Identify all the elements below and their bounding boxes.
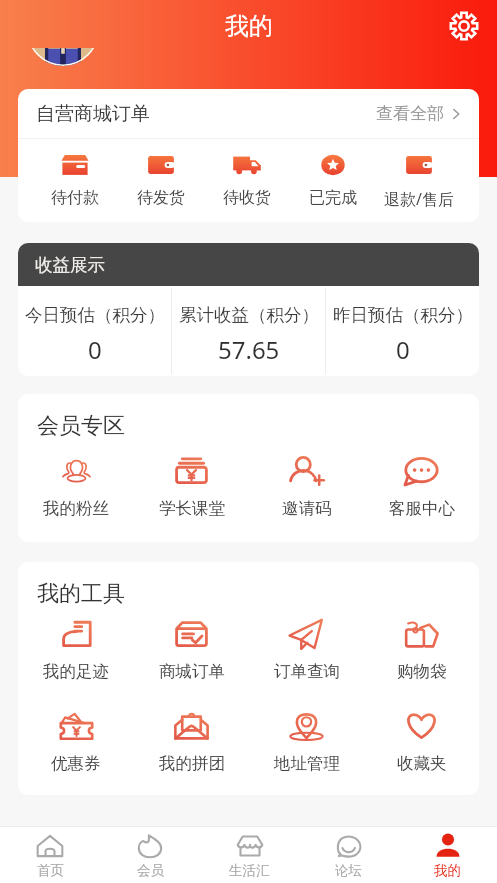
staticText: 购物袋: [397, 661, 447, 682]
button[interactable]: 累计收益（积分）: [172, 286, 325, 376]
button[interactable]: 待收货: [204, 149, 290, 208]
staticText: 收益展示: [35, 254, 105, 276]
button[interactable]: 昨日预估（积分）: [326, 286, 479, 376]
staticText: 首页: [37, 862, 64, 879]
staticText: 收藏夹: [397, 753, 447, 774]
button[interactable]: 待发货: [118, 149, 204, 208]
button[interactable]: 我的拼团: [134, 710, 249, 774]
staticText: 我的足迹: [43, 661, 109, 682]
button[interactable]: 收藏夹: [364, 710, 479, 774]
staticText: 商城订单: [159, 661, 225, 682]
staticText: 查看全部: [376, 103, 444, 124]
staticText: 57.65: [218, 333, 280, 366]
button[interactable]: 退款/售后: [376, 149, 462, 210]
button[interactable]: 学长课堂: [134, 455, 249, 519]
staticText: 客服中心: [389, 498, 455, 519]
staticText: 我的: [225, 11, 273, 41]
button[interactable]: 邀请码: [249, 455, 364, 519]
staticText: 我的工具: [37, 580, 125, 608]
button[interactable]: 优惠券: [18, 710, 134, 774]
staticText: 优惠券: [51, 753, 101, 774]
button[interactable]: 客服中心: [364, 455, 479, 519]
staticText: 我的拼团: [159, 753, 225, 774]
staticText: 昨日预估（积分）: [333, 304, 473, 326]
button[interactable]: 商城订单: [134, 618, 249, 682]
button[interactable]: 论坛: [299, 827, 398, 883]
staticText: 待发货: [137, 188, 185, 208]
staticText: 会员专区: [37, 412, 125, 440]
staticText: 邀请码: [282, 498, 332, 519]
button[interactable]: 待付款: [32, 149, 118, 208]
button[interactable]: 购物袋: [364, 618, 479, 682]
staticText: 待收货: [223, 188, 271, 208]
button[interactable]: 我的足迹: [18, 618, 134, 682]
staticText: 退款/售后: [384, 188, 454, 210]
staticText: 论坛: [335, 862, 362, 879]
staticText: 我的: [434, 862, 461, 879]
button[interactable]: 订单查询: [249, 618, 364, 682]
staticText: 订单查询: [274, 661, 340, 682]
staticText: 会员: [137, 862, 164, 879]
button[interactable]: 地址管理: [249, 710, 364, 774]
staticText: 0: [88, 333, 102, 366]
staticText: 今日预估（积分）: [25, 304, 165, 326]
button[interactable]: 会员: [100, 827, 200, 883]
staticText: 学长课堂: [159, 498, 225, 519]
staticText: 地址管理: [274, 753, 340, 774]
staticText: 生活汇: [229, 862, 270, 879]
button[interactable]: 生活汇: [200, 827, 299, 883]
button[interactable]: Avatar: [27, 48, 99, 66]
staticText: 已完成: [309, 188, 357, 208]
button[interactable]: 我的: [398, 827, 497, 883]
button[interactable]: 今日预估（积分）: [18, 286, 171, 376]
button[interactable]: 已完成: [290, 149, 376, 208]
button[interactable]: Settings: [445, 7, 483, 45]
staticText: 待付款: [51, 188, 99, 208]
staticText: 我的粉丝: [43, 498, 109, 519]
button[interactable]: 自营商城订单: [18, 89, 479, 138]
staticText: 累计收益（积分）: [179, 304, 319, 326]
button[interactable]: 首页: [0, 827, 100, 883]
button[interactable]: 我的粉丝: [18, 455, 134, 519]
staticText: 自营商城订单: [36, 102, 150, 126]
staticText: 0: [396, 333, 410, 366]
